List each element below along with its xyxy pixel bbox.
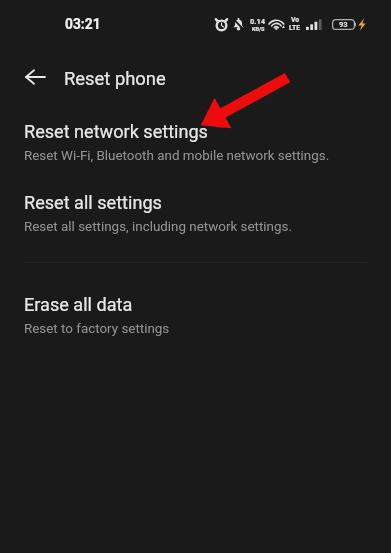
staticText: 0.14 (250, 17, 266, 26)
button[interactable]: Reset network settings (0, 106, 391, 177)
staticText: 93 (339, 20, 348, 29)
staticText: Reset all settings (24, 192, 162, 213)
staticText: Reset all settings, including network se… (24, 219, 292, 235)
staticText: Vo (291, 16, 300, 24)
button[interactable]: Erase all data (0, 279, 391, 350)
staticText: Erase all data (24, 294, 133, 315)
staticText: Reset Wi-Fi, Bluetooth and mobile networ… (24, 148, 330, 164)
staticText: LTE (289, 24, 301, 32)
staticText: Reset phone (64, 68, 166, 90)
staticText: 03:21 (65, 16, 101, 32)
button[interactable]: Reset all settings (0, 177, 391, 248)
button[interactable]: Back (17, 59, 53, 95)
staticText: Reset network settings (24, 121, 208, 142)
staticText: Reset to factory settings (24, 321, 170, 337)
staticText: KB/S (252, 26, 265, 32)
